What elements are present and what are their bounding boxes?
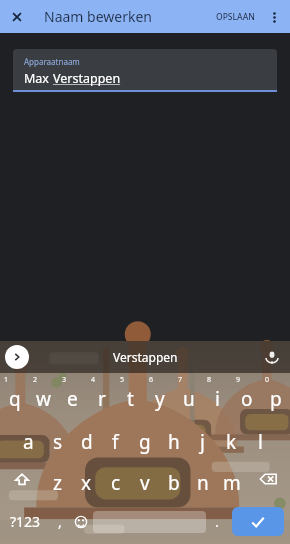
button[interactable]: Shift [0, 458, 43, 499]
staticText: b [168, 470, 180, 496]
staticText: , [58, 512, 62, 531]
button[interactable]: k [217, 417, 246, 458]
button[interactable]: d [72, 417, 101, 458]
staticText: p [270, 386, 282, 412]
staticText: k [226, 429, 237, 455]
button[interactable]: 8 [203, 373, 232, 417]
button[interactable]: c [101, 458, 130, 499]
staticText: ?123 [10, 512, 41, 531]
staticText: Max [24, 70, 53, 87]
button[interactable]: 0 [261, 373, 290, 417]
staticText: 0 [265, 375, 270, 385]
staticText: l [258, 429, 263, 455]
button[interactable]: . [206, 499, 228, 544]
staticText: j [200, 429, 205, 455]
button[interactable]: Enter [232, 507, 284, 536]
staticText: s [53, 429, 63, 455]
staticText: i [215, 386, 220, 412]
button[interactable]: Meer suggesties [5, 345, 29, 369]
staticText: Verstappen [113, 349, 178, 365]
staticText: Apparaatnaam [24, 56, 80, 67]
staticText: w [36, 386, 51, 412]
staticText: u [183, 386, 195, 412]
staticText: v [140, 470, 150, 496]
button[interactable]: Sluiten [0, 0, 33, 33]
staticText: 9 [236, 375, 241, 385]
staticText: o [241, 386, 253, 412]
button[interactable]: x [72, 458, 101, 499]
staticText: . [215, 512, 219, 531]
staticText: q [9, 386, 21, 412]
staticText: x [81, 470, 92, 496]
button[interactable]: Meer opties [261, 4, 287, 30]
button[interactable]: n [188, 458, 217, 499]
button[interactable]: f [101, 417, 130, 458]
staticText: e [67, 386, 78, 412]
staticText: g [139, 429, 151, 455]
button[interactable]: m [217, 458, 246, 499]
staticText: r [98, 386, 106, 412]
staticText: Naam bewerken [44, 7, 153, 26]
staticText: 1 [4, 375, 9, 385]
button[interactable]: s [43, 417, 72, 458]
button[interactable]: j [188, 417, 217, 458]
staticText: f [112, 429, 119, 455]
staticText: 3 [62, 375, 67, 385]
button[interactable]: Spatie [93, 511, 206, 533]
button[interactable]: v [130, 458, 159, 499]
button[interactable]: b [159, 458, 188, 499]
staticText: 8 [207, 375, 212, 385]
staticText: Verstappen [53, 70, 121, 87]
button[interactable]: 3 [58, 373, 87, 417]
button[interactable]: a [14, 417, 43, 458]
button[interactable]: g [130, 417, 159, 458]
button[interactable]: z [43, 458, 72, 499]
staticText: 2 [33, 375, 38, 385]
button[interactable]: OPSLAAN [210, 5, 261, 29]
button[interactable]: 7 [174, 373, 203, 417]
button[interactable]: 9 [232, 373, 261, 417]
button[interactable]: ?123 [0, 499, 51, 544]
staticText: y [155, 386, 165, 412]
button[interactable]: Apparaatnaam [13, 49, 277, 90]
button[interactable]: 4 [87, 373, 116, 417]
staticText: n [197, 470, 209, 496]
staticText: 5 [120, 375, 125, 385]
button[interactable]: 6 [145, 373, 174, 417]
staticText: c [111, 470, 121, 496]
button[interactable]: Spraakinvoer [258, 343, 286, 371]
staticText: d [81, 429, 93, 455]
staticText: h [168, 429, 180, 455]
button[interactable]: Backspace [246, 458, 290, 499]
button[interactable]: 5 [116, 373, 145, 417]
button[interactable]: 2 [29, 373, 58, 417]
button[interactable]: , [51, 499, 68, 544]
staticText: 6 [149, 375, 154, 385]
staticText: OPSLAAN [216, 11, 255, 23]
button[interactable]: h [159, 417, 188, 458]
button[interactable]: Verstappen [103, 344, 188, 370]
staticText: m [223, 470, 241, 496]
staticText: t [127, 386, 134, 412]
staticText: 4 [91, 375, 96, 385]
staticText: z [53, 470, 62, 496]
staticText: 7 [178, 375, 183, 385]
button[interactable]: Emoji [68, 499, 93, 544]
staticText: a [23, 429, 34, 455]
button[interactable]: l [246, 417, 275, 458]
button[interactable]: 1 [0, 373, 29, 417]
